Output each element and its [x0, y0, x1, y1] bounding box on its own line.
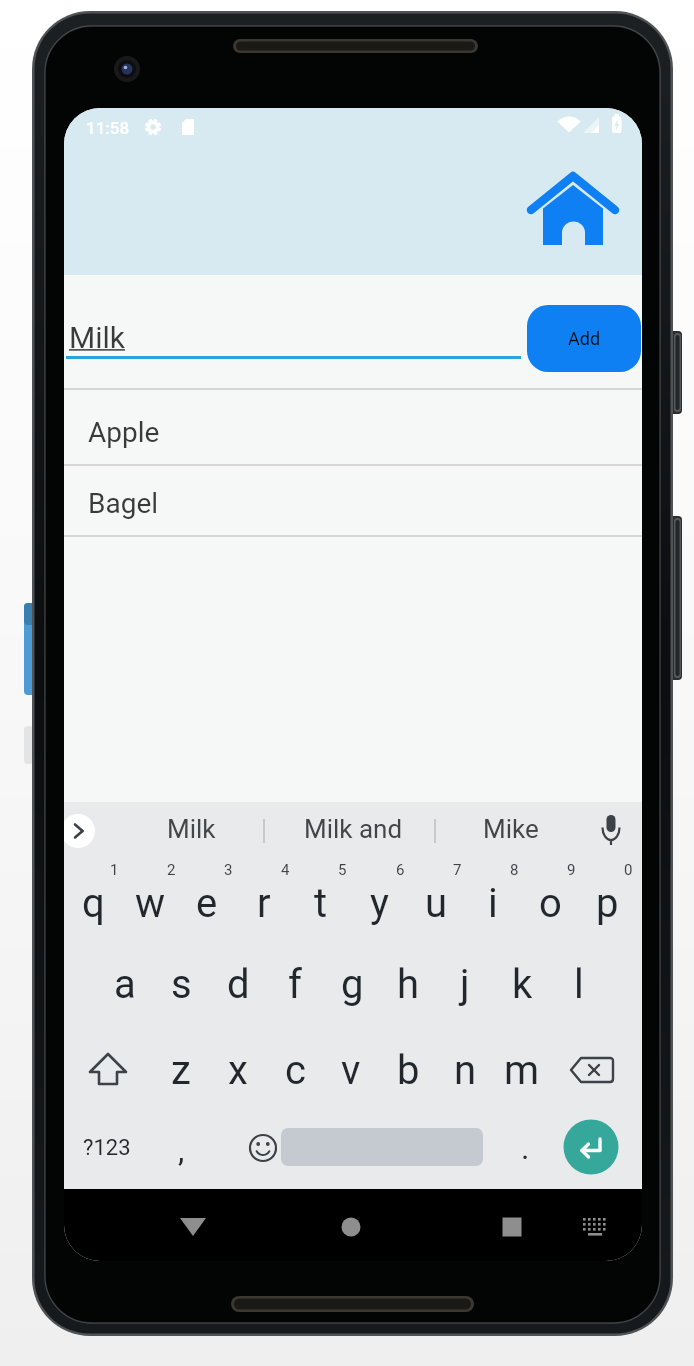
button[interactable] — [563, 1119, 619, 1175]
staticText: k — [512, 961, 533, 1008]
button[interactable]: p — [579, 865, 635, 941]
staticText: b — [397, 1047, 420, 1094]
staticText: v — [341, 1047, 361, 1094]
staticText: s — [171, 961, 192, 1008]
staticText: Milk — [167, 814, 216, 844]
button[interactable] — [520, 164, 626, 254]
staticText: l — [574, 961, 584, 1008]
button[interactable]: w — [122, 865, 178, 941]
staticText: x — [228, 1047, 248, 1094]
staticText: 8 — [510, 861, 519, 879]
button[interactable]: , — [153, 1112, 209, 1188]
button[interactable]: ?123 — [79, 1110, 135, 1186]
staticText: , — [178, 1131, 185, 1169]
button[interactable]: t — [293, 865, 349, 941]
button[interactable]: n — [437, 1032, 493, 1108]
button[interactable]: Milk — [116, 803, 266, 855]
staticText: 1 — [110, 861, 119, 879]
button[interactable]: v — [323, 1032, 379, 1108]
button[interactable]: Add — [527, 305, 641, 372]
button[interactable] — [482, 1189, 542, 1261]
staticText: q — [82, 880, 105, 927]
button[interactable]: h — [380, 946, 436, 1022]
button[interactable]: Mike — [436, 803, 586, 855]
button[interactable]: x — [210, 1032, 266, 1108]
staticText: 0 — [624, 861, 633, 879]
staticText: 7 — [453, 861, 462, 879]
staticText: g — [341, 961, 364, 1008]
staticText: i — [488, 880, 498, 927]
staticText: Milk — [69, 320, 125, 355]
button[interactable]: d — [210, 946, 266, 1022]
staticText: Milk and — [304, 814, 403, 844]
staticText: 4 — [281, 861, 290, 879]
button[interactable] — [583, 808, 639, 854]
button[interactable]: q — [65, 865, 121, 941]
button[interactable]: . — [497, 1110, 553, 1186]
staticText: o — [539, 880, 562, 927]
button[interactable]: g — [324, 946, 380, 1022]
staticText: 5 — [338, 861, 347, 879]
button[interactable]: i — [465, 865, 521, 941]
button[interactable]: j — [437, 946, 493, 1022]
button[interactable]: c — [267, 1032, 323, 1108]
staticText: Add — [568, 328, 601, 349]
staticText: . — [521, 1129, 530, 1167]
button[interactable]: o — [522, 865, 578, 941]
button[interactable]: Bagel — [64, 465, 642, 535]
button[interactable]: e — [179, 865, 235, 941]
button[interactable]: r — [236, 865, 292, 941]
button[interactable]: Apple — [64, 389, 642, 464]
staticText: Apple — [88, 416, 160, 449]
button[interactable]: m — [494, 1032, 550, 1108]
button[interactable]: s — [153, 946, 209, 1022]
staticText: p — [596, 880, 619, 927]
button[interactable] — [569, 1189, 621, 1261]
staticText: d — [227, 961, 250, 1008]
button[interactable]: b — [380, 1032, 436, 1108]
staticText: a — [114, 961, 136, 1008]
staticText: 11:58 — [86, 118, 130, 138]
button[interactable]: Milk and — [278, 803, 428, 855]
button[interactable]: y — [351, 865, 407, 941]
staticText: y — [370, 880, 389, 927]
staticText: e — [196, 880, 218, 927]
staticText: n — [454, 1047, 477, 1094]
staticText: 2 — [167, 861, 176, 879]
staticText: m — [504, 1047, 540, 1094]
staticText: 6 — [396, 861, 405, 879]
button[interactable]: z — [153, 1032, 209, 1108]
staticText: ?123 — [83, 1135, 131, 1161]
button[interactable] — [163, 1189, 223, 1261]
staticText: h — [397, 961, 420, 1008]
staticText: j — [460, 961, 470, 1008]
staticText: z — [171, 1047, 191, 1094]
staticText: Bagel — [88, 487, 159, 520]
staticText: t — [314, 880, 328, 927]
button[interactable]: a — [97, 946, 153, 1022]
button[interactable]: k — [494, 946, 550, 1022]
staticText: u — [425, 880, 448, 927]
staticText: f — [288, 961, 302, 1008]
button[interactable] — [321, 1189, 381, 1261]
button[interactable]: f — [267, 946, 323, 1022]
button[interactable] — [64, 298, 522, 358]
button[interactable] — [64, 808, 104, 854]
staticText: w — [135, 880, 166, 927]
button[interactable]: l — [551, 946, 607, 1022]
button[interactable]: u — [408, 865, 464, 941]
staticText: 9 — [567, 861, 576, 879]
staticText: Mike — [483, 814, 539, 844]
staticText: c — [285, 1047, 306, 1094]
staticText: r — [257, 880, 271, 927]
staticText: 3 — [224, 861, 233, 879]
